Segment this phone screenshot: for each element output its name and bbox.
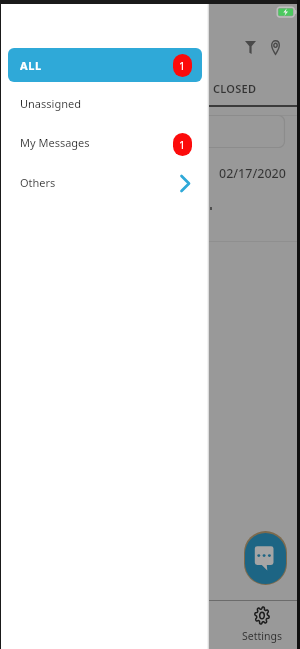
staticText: ALL <box>20 58 42 73</box>
button[interactable]: CLOSED <box>213 78 257 98</box>
button[interactable]: Unassigned <box>0 84 209 123</box>
button[interactable]: My Messages <box>0 123 209 162</box>
button[interactable]: Others <box>0 163 209 202</box>
staticText: 1 <box>179 58 186 73</box>
staticText: Unassigned <box>20 96 81 111</box>
staticText: 1 <box>179 137 186 152</box>
staticText: My Messages <box>20 135 90 150</box>
button[interactable]: Close navigation drawer <box>209 0 300 649</box>
button[interactable]: New message <box>245 533 286 584</box>
staticText: CLOSED <box>213 81 257 96</box>
button[interactable]: Filter <box>237 33 263 61</box>
button[interactable]: ALL <box>8 48 202 82</box>
staticText: 02/17/2020 <box>219 165 286 182</box>
button[interactable] <box>150 115 285 148</box>
staticText: Settings <box>242 629 282 643</box>
staticText: Others <box>20 175 56 190</box>
button[interactable]: Location <box>262 32 288 62</box>
button[interactable]: Settings <box>232 601 292 649</box>
